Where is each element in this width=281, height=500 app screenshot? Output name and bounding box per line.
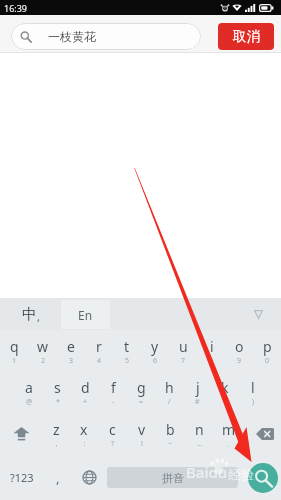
staticText: m <box>222 420 236 439</box>
staticText: d <box>81 378 90 397</box>
button[interactable]: u <box>169 330 197 372</box>
button[interactable]: w <box>29 330 57 372</box>
button[interactable]: y <box>141 330 169 372</box>
staticText: z <box>53 420 60 439</box>
staticText: * <box>56 397 60 407</box>
button[interactable]: , <box>44 455 71 500</box>
staticText: l <box>251 378 255 397</box>
staticText: = <box>139 397 144 407</box>
staticText: ( <box>224 397 227 407</box>
button[interactable]: q <box>0 330 29 372</box>
staticText: 一枝黄花 <box>48 29 96 44</box>
button[interactable]: ?123 <box>0 455 44 500</box>
staticText: v <box>138 420 146 439</box>
button[interactable]: j <box>183 372 211 413</box>
staticText: 、 <box>226 439 233 448</box>
button[interactable]: d <box>71 372 99 413</box>
staticText: ， <box>53 439 60 448</box>
staticText: Baidu <box>186 462 228 482</box>
button[interactable]: e <box>57 330 85 372</box>
button[interactable]: m <box>214 413 243 455</box>
staticText: 16:39 <box>4 2 28 14</box>
staticText: - <box>112 397 115 407</box>
staticText: 3 <box>69 356 74 366</box>
staticText: ? <box>111 439 115 449</box>
staticText: 8 <box>209 356 214 366</box>
button[interactable]: g <box>127 372 155 413</box>
staticText: q <box>10 337 19 356</box>
staticText: o <box>235 337 244 356</box>
staticText: 2 <box>41 356 46 366</box>
staticText: 6 <box>153 356 158 366</box>
staticText: h <box>165 378 174 397</box>
staticText: r <box>96 337 102 356</box>
button[interactable]: 拼音 <box>107 467 238 488</box>
staticText: # <box>195 397 200 407</box>
button[interactable]: x <box>70 413 98 455</box>
staticText: / <box>168 397 171 407</box>
staticText: e <box>67 337 75 356</box>
staticText: 经验 <box>228 466 254 482</box>
button[interactable]: o <box>225 330 253 372</box>
staticText: u <box>179 337 188 356</box>
button[interactable]: a <box>14 372 43 413</box>
staticText: 取消 <box>233 28 260 45</box>
button[interactable]: Shift <box>0 413 42 455</box>
button[interactable]: n <box>185 413 214 455</box>
staticText: x <box>80 420 88 439</box>
button[interactable]: Search <box>248 463 278 493</box>
staticText: ： <box>81 439 88 448</box>
staticText: En <box>78 307 93 323</box>
button[interactable]: h <box>155 372 183 413</box>
button[interactable]: r <box>85 330 113 372</box>
button[interactable]: c <box>98 413 127 455</box>
staticText: t <box>124 337 130 356</box>
staticText: s <box>54 378 61 397</box>
button[interactable]: s <box>43 372 71 413</box>
staticText: 0 <box>265 356 270 366</box>
staticText: 9 <box>237 356 242 366</box>
staticText: p <box>263 337 272 356</box>
staticText: + <box>83 397 88 407</box>
staticText: ~ <box>168 439 173 449</box>
staticText: j <box>196 378 200 397</box>
staticText: ) <box>252 397 255 407</box>
button[interactable]: f <box>99 372 127 413</box>
button[interactable]: 中 <box>0 298 61 330</box>
staticText: 拼音 <box>162 471 184 485</box>
button[interactable]: Language <box>71 455 107 500</box>
button[interactable]: t <box>113 330 141 372</box>
button[interactable]: 取消 <box>218 23 274 50</box>
staticText: ?123 <box>10 470 34 485</box>
staticText: n <box>195 420 204 439</box>
button[interactable]: z <box>42 413 70 455</box>
button[interactable]: k <box>211 372 239 413</box>
button[interactable]: 一枝黄花 <box>11 23 201 50</box>
staticText: ! <box>141 439 143 449</box>
staticText: 4 <box>97 356 102 366</box>
staticText: , <box>56 469 60 487</box>
staticText: 5 <box>125 356 130 366</box>
button[interactable]: i <box>197 330 225 372</box>
staticText: a <box>25 378 33 397</box>
staticText: i <box>210 337 214 356</box>
staticText: c <box>109 420 116 439</box>
button[interactable]: b <box>156 413 185 455</box>
button[interactable]: Hide keyboard <box>249 305 267 323</box>
staticText: f <box>111 378 116 397</box>
button[interactable]: v <box>127 413 156 455</box>
staticText: g <box>137 378 146 397</box>
staticText: k <box>221 378 229 397</box>
button[interactable]: l <box>239 372 267 413</box>
staticText: @ <box>26 397 33 407</box>
button[interactable]: En <box>61 300 110 329</box>
staticText: 中 <box>22 305 37 324</box>
staticText: , <box>37 309 40 324</box>
button[interactable]: p <box>253 330 281 372</box>
staticText: y <box>151 337 159 356</box>
button[interactable]: Backspace <box>243 413 281 455</box>
staticText: … <box>197 439 203 449</box>
staticText: 1 <box>12 356 17 366</box>
staticText: b <box>166 420 175 439</box>
staticText: w <box>37 337 49 356</box>
